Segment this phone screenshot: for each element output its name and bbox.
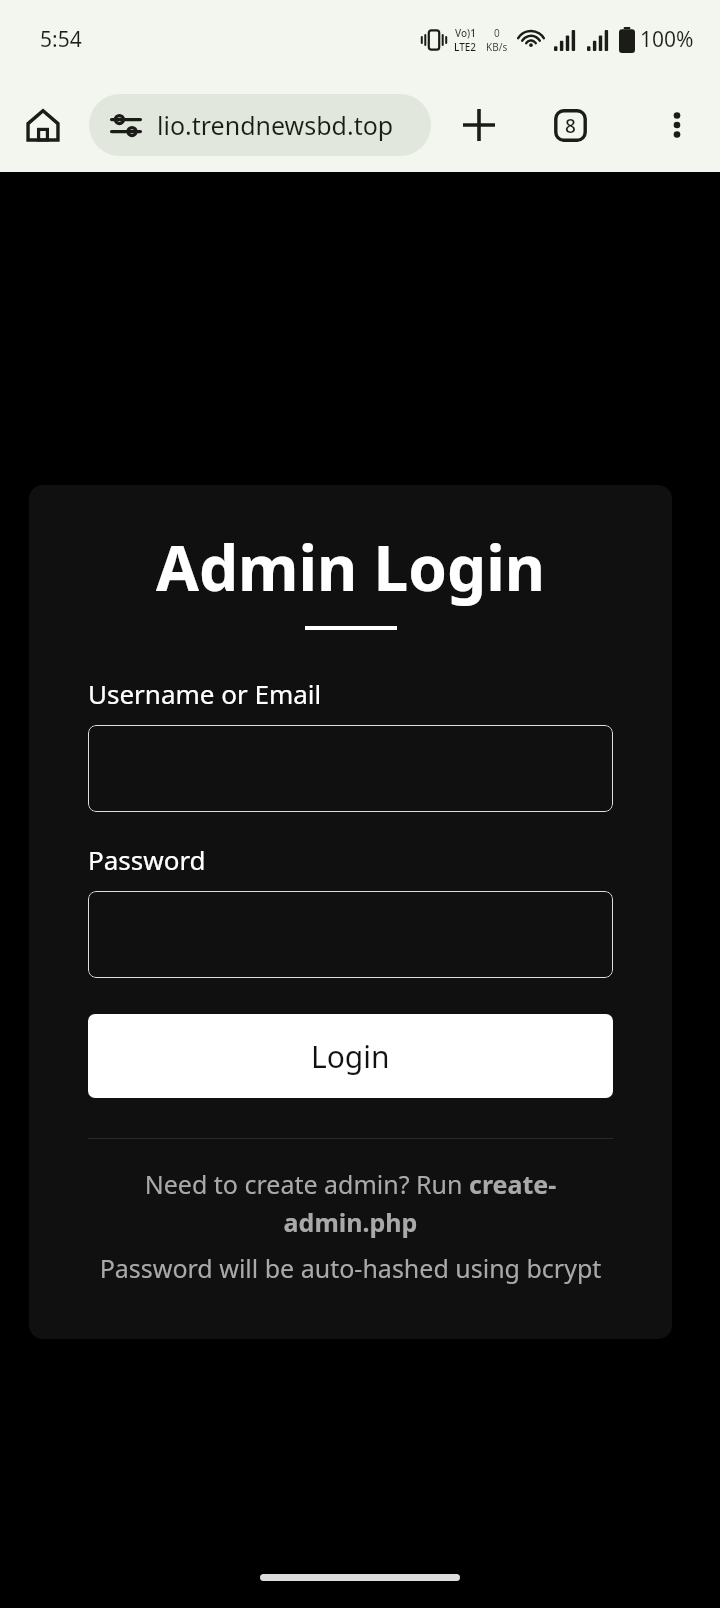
staticText: 100% [640, 25, 694, 54]
button[interactable] [88, 725, 613, 812]
button[interactable] [88, 891, 613, 978]
button[interactable]: New tab [450, 96, 508, 154]
staticText: lio.trendnewsbd.top [157, 108, 394, 142]
staticText: Vo)1 [455, 26, 476, 40]
button[interactable]: Login [88, 1014, 613, 1098]
button[interactable]: More options [648, 96, 706, 154]
staticText: KB/s [486, 40, 508, 54]
staticText: Password [88, 842, 206, 877]
button[interactable]: lio.trendnewsbd.top [89, 94, 431, 156]
staticText: 5:54 [40, 25, 82, 54]
button[interactable]: Tabs: 8 [541, 96, 599, 154]
staticText: 8 [565, 113, 576, 139]
staticText: Need to create admin? Run create-admin.p… [88, 1167, 613, 1239]
staticText: Password will be auto-hashed using bcryp… [88, 1251, 613, 1285]
staticText: LTE2 [454, 40, 477, 54]
staticText: Login [311, 1036, 390, 1077]
staticText: 0 [494, 26, 500, 40]
staticText: Username or Email [88, 676, 322, 711]
button[interactable]: Home [14, 96, 72, 154]
staticText: Admin Login [88, 525, 613, 609]
